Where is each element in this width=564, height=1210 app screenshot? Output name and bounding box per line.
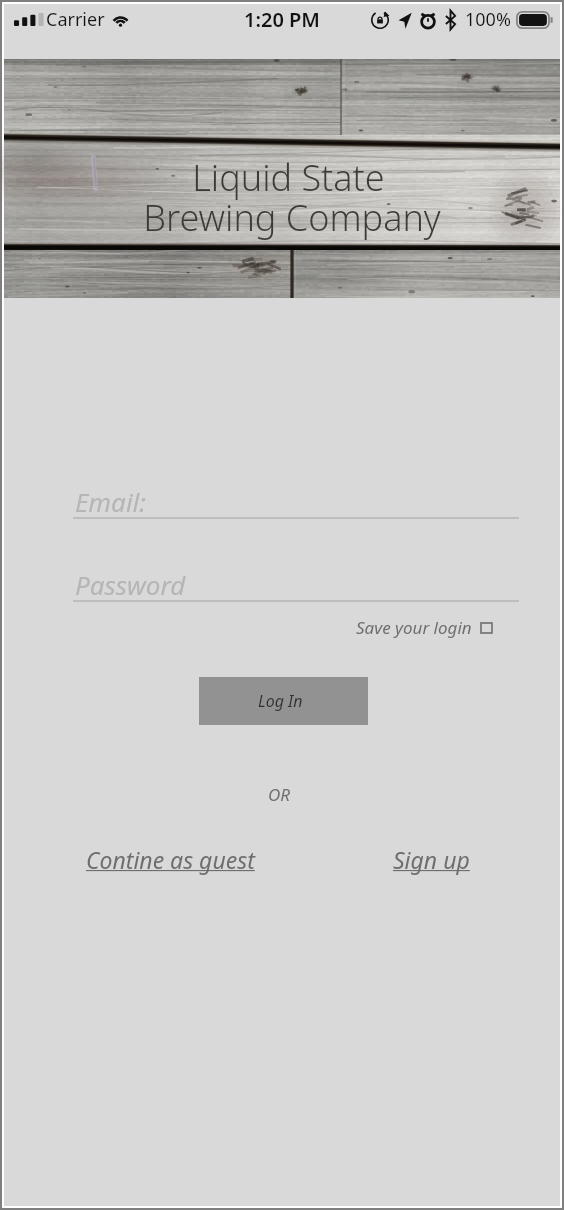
staticText: 100% [465,7,511,32]
button[interactable]: Contine as guest [86,844,255,875]
staticText: Email: [75,484,146,519]
staticText: Log In [258,690,303,712]
staticText: OR [268,783,290,806]
other: Bluetooth [445,10,456,30]
other: Battery full [516,11,555,29]
button[interactable] [73,565,519,603]
other: Location [398,11,412,29]
staticText: Liquid State [192,153,385,202]
button[interactable]: Sign up [393,844,470,875]
other: Rotation lock [371,11,389,29]
staticText: Password [75,567,186,602]
staticText: Save your login [356,616,472,639]
other: Alarm [420,11,436,29]
staticText: Brewing Company [143,193,441,242]
button[interactable]: Save your login [356,616,492,639]
staticText: Carrier [46,7,105,32]
button[interactable] [73,482,519,520]
button[interactable]: Log In [199,677,368,725]
staticText: 1:20 PM [244,6,320,33]
